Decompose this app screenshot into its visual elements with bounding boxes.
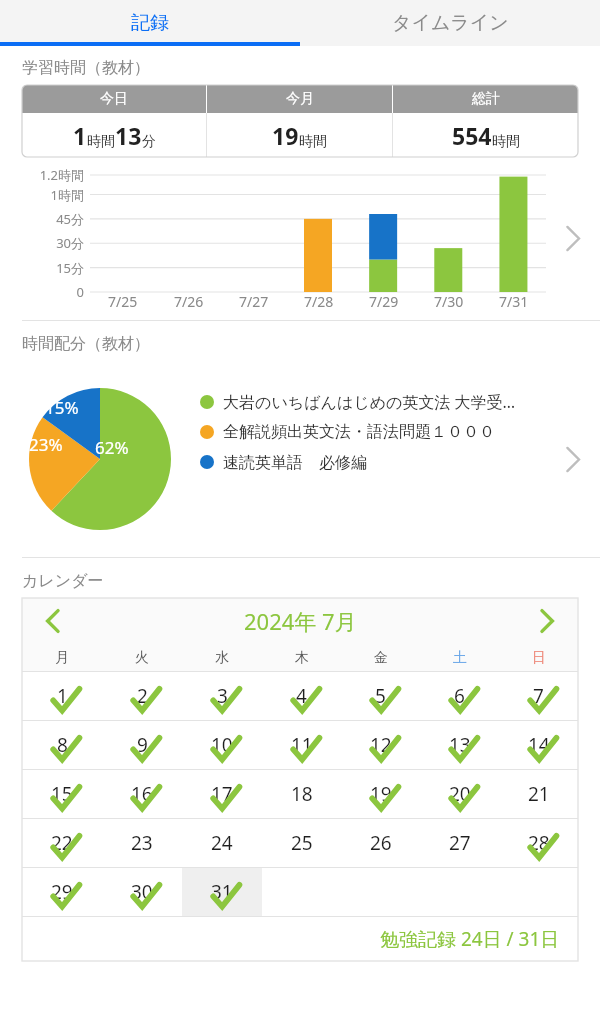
staticText: 19: [370, 781, 392, 807]
staticText: 24: [211, 830, 233, 856]
staticText: 13: [115, 120, 142, 151]
button[interactable]: 15: [22, 770, 102, 818]
button[interactable]: 21: [499, 770, 578, 818]
staticText: 21: [528, 781, 550, 807]
staticText: 30: [131, 879, 153, 905]
staticText: 時間: [87, 133, 115, 151]
button[interactable]: 前の月: [22, 598, 84, 644]
button[interactable]: 2: [102, 672, 182, 720]
button[interactable]: 22: [22, 819, 102, 867]
button[interactable]: 23: [102, 819, 182, 867]
staticText: 1時間: [0, 186, 84, 204]
button[interactable]: 17: [182, 770, 262, 818]
staticText: 12: [370, 732, 392, 758]
staticText: 23%: [29, 433, 63, 456]
button[interactable]: 13: [420, 721, 499, 769]
button[interactable]: 4: [262, 672, 341, 720]
button[interactable]: 28: [499, 819, 578, 867]
staticText: 22: [51, 830, 73, 856]
staticText: 全解説頻出英文法・語法問題１０００: [223, 422, 495, 442]
staticText: 土: [453, 649, 467, 667]
button[interactable]: タイムライン: [300, 0, 600, 46]
button[interactable]: 次の月: [516, 598, 578, 644]
button[interactable]: 5: [341, 672, 420, 720]
staticText: 27: [449, 830, 471, 856]
button[interactable]: 26: [341, 819, 420, 867]
staticText: 13: [449, 732, 471, 758]
staticText: 6: [454, 683, 465, 709]
staticText: 19: [272, 120, 299, 151]
staticText: 1.2時間: [0, 166, 84, 184]
button[interactable]: 27: [420, 819, 499, 867]
button[interactable]: 速読英単語 必修編: [200, 447, 546, 477]
staticText: 4: [296, 683, 307, 709]
staticText: 総計: [472, 90, 500, 108]
staticText: 金: [374, 649, 388, 667]
staticText: 月: [55, 649, 69, 667]
button[interactable]: 8: [22, 721, 102, 769]
button[interactable]: 554: [393, 113, 578, 157]
staticText: 今日: [100, 90, 128, 108]
button[interactable]: 19: [341, 770, 420, 818]
staticText: 時間: [492, 133, 520, 151]
button[interactable]: 29: [22, 868, 102, 916]
staticText: 日: [532, 649, 546, 667]
staticText: 1: [73, 120, 87, 151]
button[interactable]: 19: [207, 113, 392, 157]
staticText: 1: [57, 683, 68, 709]
staticText: 7/30: [434, 292, 464, 311]
staticText: 7: [533, 683, 544, 709]
button[interactable]: 大岩のいちばんはじめの英文法 大学受…: [200, 387, 546, 417]
button[interactable]: 学習時間の詳細へ: [546, 157, 600, 320]
staticText: 554: [452, 120, 492, 151]
staticText: 15分: [0, 259, 84, 277]
button[interactable]: 記録: [0, 0, 300, 46]
staticText: 11: [291, 732, 313, 758]
staticText: 分: [142, 133, 156, 151]
button[interactable]: 1: [22, 672, 102, 720]
staticText: 記録: [131, 11, 169, 35]
button[interactable]: 24: [182, 819, 262, 867]
button[interactable]: 時間配分の詳細へ: [546, 361, 600, 557]
staticText: 木: [295, 649, 309, 667]
staticText: 23: [131, 830, 153, 856]
staticText: 20: [449, 781, 471, 807]
button[interactable]: 31: [182, 868, 262, 916]
button[interactable]: 14: [499, 721, 578, 769]
staticText: 18: [291, 781, 313, 807]
staticText: 30分: [0, 234, 84, 252]
staticText: タイムライン: [392, 11, 509, 35]
staticText: カレンダー: [22, 571, 104, 591]
staticText: 16: [131, 781, 153, 807]
staticText: 9: [137, 732, 148, 758]
button[interactable]: 18: [262, 770, 341, 818]
button[interactable]: 3: [182, 672, 262, 720]
staticText: 10: [211, 732, 233, 758]
button[interactable]: 25: [262, 819, 341, 867]
button[interactable]: 9: [102, 721, 182, 769]
staticText: 3: [217, 683, 228, 709]
button[interactable]: 10: [182, 721, 262, 769]
button[interactable]: 全解説頻出英文法・語法問題１０００: [200, 417, 546, 447]
button[interactable]: 20: [420, 770, 499, 818]
staticText: 時間: [299, 133, 327, 151]
button[interactable]: 11: [262, 721, 341, 769]
staticText: 45分: [0, 210, 84, 228]
button[interactable]: 1: [22, 113, 206, 157]
button[interactable]: 7: [499, 672, 578, 720]
button[interactable]: 6: [420, 672, 499, 720]
button[interactable]: 12: [341, 721, 420, 769]
button[interactable]: 16: [102, 770, 182, 818]
staticText: 水: [215, 649, 229, 667]
button[interactable]: 30: [102, 868, 182, 916]
staticText: 15%: [45, 396, 79, 419]
staticText: 62%: [95, 436, 129, 459]
staticText: 2024年 7月: [244, 606, 357, 636]
staticText: 25: [291, 830, 313, 856]
staticText: 大岩のいちばんはじめの英文法 大学受…: [223, 391, 516, 413]
staticText: 2: [137, 683, 148, 709]
